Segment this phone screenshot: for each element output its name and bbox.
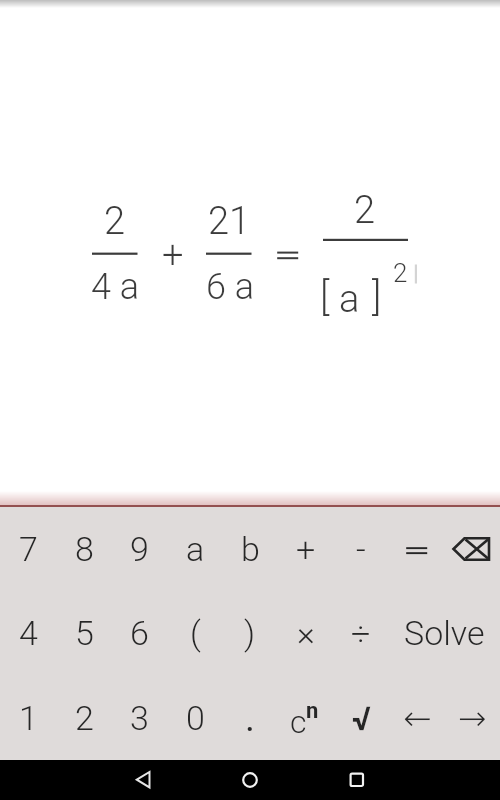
button[interactable]: 7	[0, 507, 56, 591]
staticText: 2	[75, 698, 94, 738]
staticText: 6	[130, 613, 149, 653]
button[interactable]	[107, 760, 181, 800]
staticText: a	[339, 277, 360, 322]
staticText: 2	[104, 199, 126, 244]
staticText: 1	[19, 698, 38, 738]
button[interactable]: b	[222, 507, 278, 591]
button[interactable]	[222, 676, 278, 760]
button[interactable]	[213, 760, 287, 800]
staticText: 4	[19, 613, 38, 653]
button[interactable]: 4	[0, 591, 56, 675]
staticText: [	[320, 274, 330, 320]
button[interactable]: 6	[111, 591, 167, 675]
staticText: 8	[75, 529, 94, 569]
staticText: 0	[186, 698, 205, 738]
staticText: 3	[130, 698, 149, 738]
button[interactable]: 9	[111, 507, 167, 591]
staticText: +	[162, 233, 184, 278]
staticText: 4 a	[91, 266, 140, 308]
staticText: ×	[297, 613, 315, 653]
staticText: a	[186, 529, 205, 569]
staticText: c	[290, 703, 307, 741]
button[interactable]: +	[278, 507, 334, 591]
button[interactable]: -	[333, 507, 389, 591]
button[interactable]: 0	[167, 676, 223, 760]
staticText: )	[244, 613, 256, 653]
staticText: √	[352, 699, 371, 738]
button[interactable]: 3	[111, 676, 167, 760]
staticText: ]	[372, 274, 382, 320]
button[interactable]: ×	[278, 591, 334, 675]
button[interactable]: 1	[0, 676, 56, 760]
staticText: 9	[130, 529, 149, 569]
staticText: 6 a	[206, 266, 255, 308]
button[interactable]: Solve	[389, 591, 500, 675]
button[interactable]: √	[333, 676, 389, 760]
staticText: ÷	[351, 613, 371, 653]
button[interactable]: (	[167, 591, 223, 675]
staticText: n	[306, 698, 319, 724]
button[interactable]: c	[278, 676, 334, 760]
staticText: →	[458, 698, 487, 738]
staticText: 21	[208, 199, 251, 244]
staticText: -	[356, 529, 366, 569]
button[interactable]: ←	[389, 676, 445, 760]
button[interactable]: ÷	[333, 591, 389, 675]
button[interactable]: 5	[56, 591, 112, 675]
button[interactable]: a	[167, 507, 223, 591]
button[interactable]	[444, 507, 500, 591]
staticText: 2	[354, 188, 376, 233]
button[interactable]: 8	[56, 507, 112, 591]
button[interactable]: →	[444, 676, 500, 760]
staticText: (	[190, 613, 201, 653]
button[interactable]	[389, 507, 445, 591]
button[interactable]	[0, 8, 500, 490]
staticText: 7	[19, 529, 38, 569]
button[interactable]: )	[222, 591, 278, 675]
staticText: 2	[393, 258, 408, 288]
staticText: ←	[403, 698, 432, 738]
staticText: 5	[75, 613, 94, 653]
button[interactable]	[320, 760, 394, 800]
button[interactable]: 2	[56, 676, 112, 760]
staticText: Solve	[404, 613, 485, 653]
staticText: +	[296, 529, 316, 569]
staticText: b	[241, 529, 260, 569]
